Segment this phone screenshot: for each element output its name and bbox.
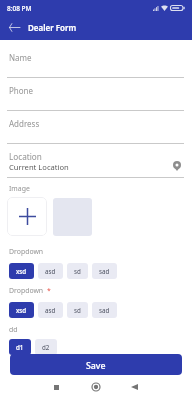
button[interactable]: Back xyxy=(124,377,144,397)
button[interactable]: sad xyxy=(92,263,117,279)
staticText: asd xyxy=(45,267,56,275)
staticText: Location xyxy=(9,151,42,162)
button[interactable]: d2 xyxy=(35,339,57,355)
staticText: Phone xyxy=(9,85,34,96)
button[interactable]: Add image xyxy=(7,197,47,236)
staticText: d1 xyxy=(16,343,24,351)
staticText: Dropdown xyxy=(9,247,44,256)
staticText: Name xyxy=(9,52,32,63)
staticText: sad xyxy=(99,267,110,275)
staticText: Save xyxy=(86,360,106,372)
button[interactable]: Save xyxy=(10,354,182,375)
staticText: Address xyxy=(9,118,40,129)
button[interactable]: asd xyxy=(38,302,63,318)
staticText: Image xyxy=(9,184,30,193)
button[interactable]: sd xyxy=(67,302,88,318)
staticText: asd xyxy=(45,306,56,314)
button[interactable]: xsd xyxy=(9,263,34,279)
staticText: Dropdown xyxy=(9,286,44,295)
button[interactable]: Pick location xyxy=(170,159,184,173)
staticText: xsd xyxy=(16,306,27,314)
button[interactable]: Recents xyxy=(46,377,66,397)
button[interactable]: sd xyxy=(67,263,88,279)
staticText: * xyxy=(47,286,51,295)
staticText: dd xyxy=(9,325,18,334)
button[interactable]: Home xyxy=(86,377,106,397)
staticText: d2 xyxy=(42,343,50,351)
staticText: Dealer Form xyxy=(28,22,77,33)
staticText: sad xyxy=(99,306,110,314)
staticText: sd xyxy=(74,306,81,314)
staticText: xsd xyxy=(16,267,27,275)
button[interactable]: sad xyxy=(92,302,117,318)
button[interactable]: d1 xyxy=(9,339,31,355)
staticText: sd xyxy=(74,267,81,275)
staticText: Current Location xyxy=(9,162,69,172)
button[interactable]: asd xyxy=(38,263,63,279)
button[interactable]: Back xyxy=(4,18,24,37)
staticText: 8:08 PM xyxy=(7,4,32,13)
button[interactable]: xsd xyxy=(9,302,34,318)
